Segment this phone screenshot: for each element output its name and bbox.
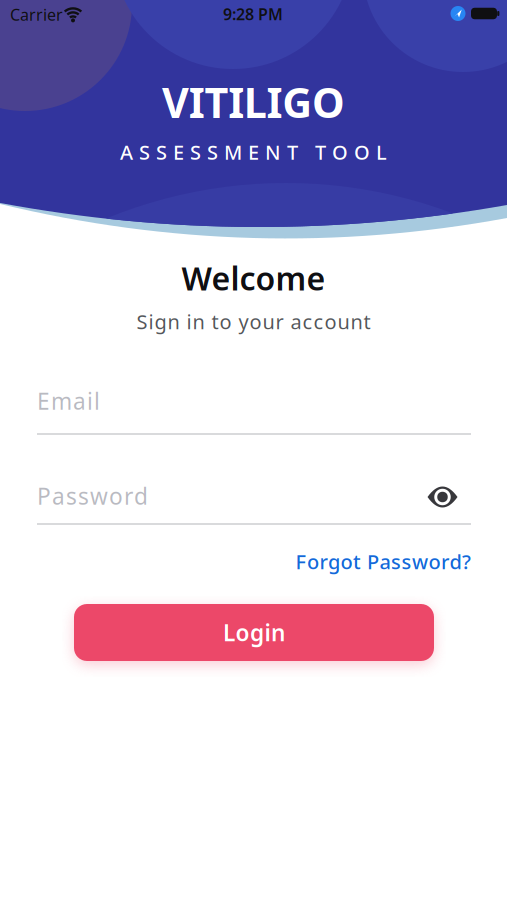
staticText: Welcome [181,257,325,299]
button[interactable]: Login [74,604,434,661]
staticText: Carrier [10,4,63,25]
staticText: 9:28 PM [223,3,283,25]
button[interactable]: Show password [424,483,460,511]
staticText: Forgot Password? [295,548,471,575]
staticText: Email [37,386,100,416]
staticText: Sign in to your account [136,308,370,335]
staticText: Password [37,481,148,511]
staticText: Login [223,617,285,647]
staticText: VITILIGO [162,75,345,129]
button[interactable]: Forgot Password? [295,548,471,575]
staticText: ASSESSMENT TOOL [120,139,387,165]
